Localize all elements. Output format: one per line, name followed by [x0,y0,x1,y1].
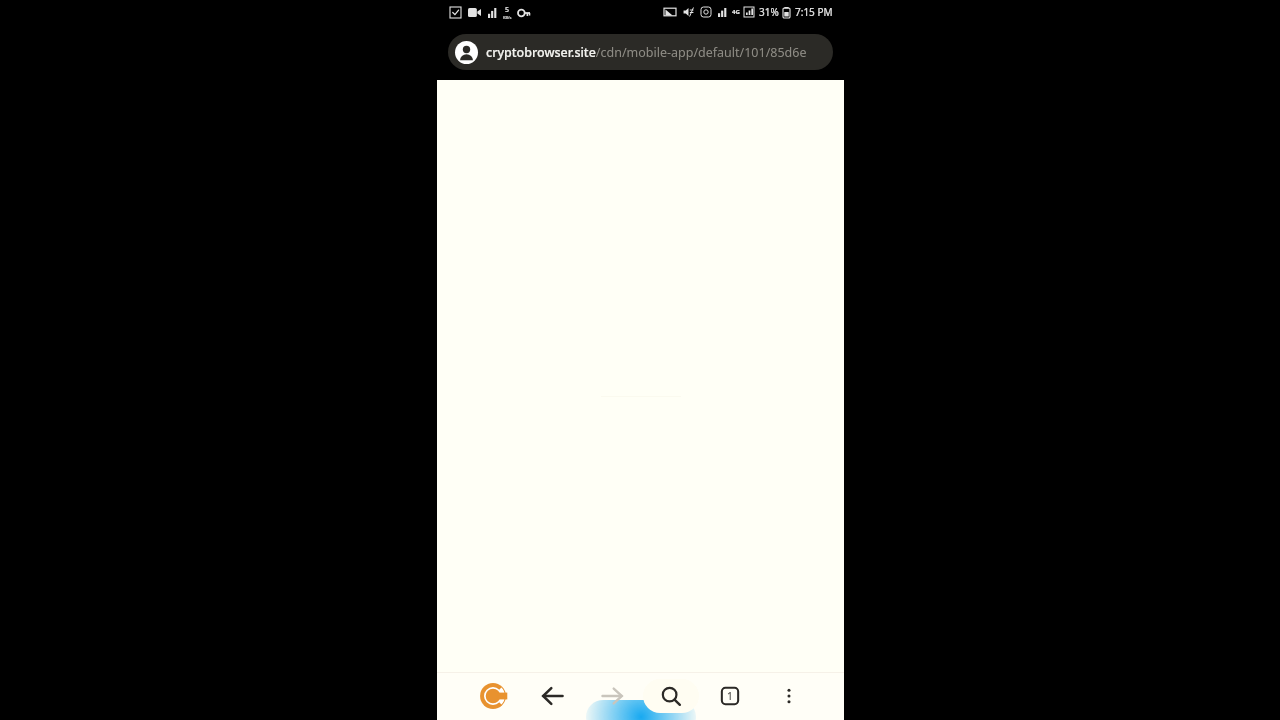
staticText: 1 [727,689,733,703]
button[interactable]: Tabs, 1 open [700,672,759,720]
button[interactable]: Back [523,672,582,720]
staticText: KB/s [503,15,512,20]
staticText: 31% [759,5,779,19]
other: Search [654,679,688,713]
button[interactable]: Account [448,34,833,70]
other: Account [455,41,478,64]
staticText: 4G [732,8,740,16]
staticText: cryptobrowser.site/cdn/mobile-app/defaul… [486,44,807,61]
staticText: 5 [505,5,510,15]
button[interactable]: CryptoTab home [463,672,523,720]
button[interactable]: Forward [582,672,641,720]
staticText: 7:15 PM [795,5,833,19]
button[interactable]: Search [641,672,700,720]
button[interactable]: More options [759,672,818,720]
